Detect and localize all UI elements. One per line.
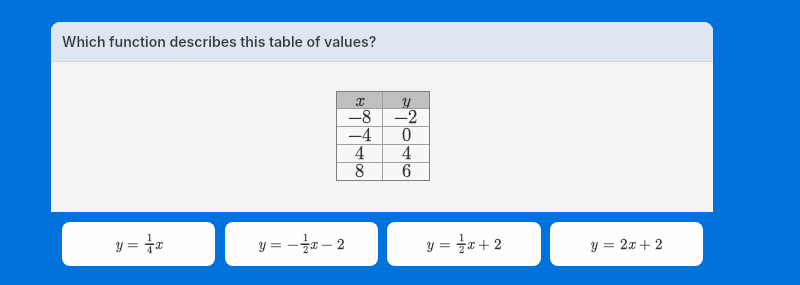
staticText: Which function describes this table of v… [62, 33, 377, 50]
button[interactable] [62, 222, 215, 266]
button[interactable] [225, 222, 378, 266]
button[interactable] [387, 222, 541, 266]
button[interactable] [550, 222, 703, 266]
